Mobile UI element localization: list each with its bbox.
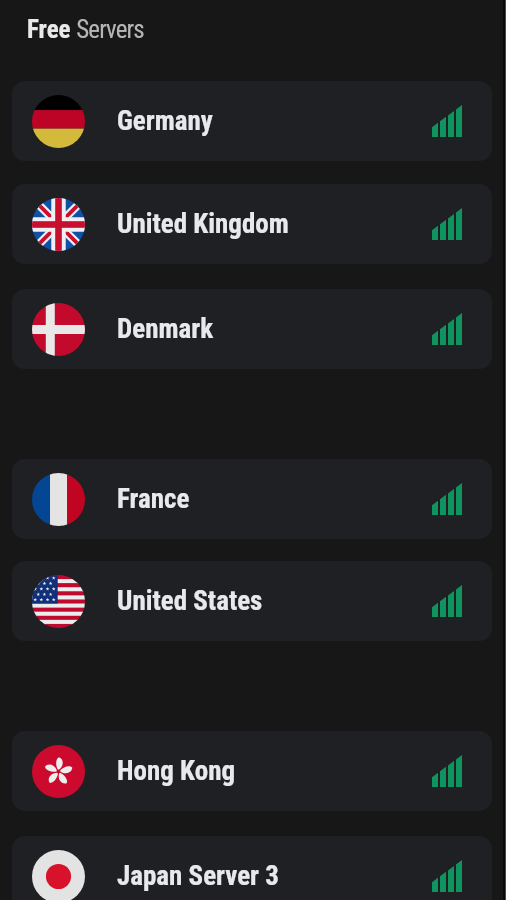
staticText: Free Servers <box>27 15 144 44</box>
staticText: Japan Server 3 <box>117 860 279 892</box>
other: Signal strength <box>432 313 462 345</box>
button[interactable]: Denmark <box>12 289 492 369</box>
staticText: Denmark <box>117 313 214 345</box>
button[interactable]: United Kingdom <box>12 184 492 264</box>
staticText: Germany <box>117 105 213 137</box>
button[interactable]: Hong Kong <box>12 731 492 811</box>
staticText: United Kingdom <box>117 208 289 240</box>
staticText: France <box>117 483 190 515</box>
other: Signal strength <box>432 208 462 240</box>
other: Signal strength <box>432 860 462 892</box>
other: Signal strength <box>432 483 462 515</box>
button[interactable]: Japan Server 3 <box>12 836 492 900</box>
button[interactable]: United States <box>12 561 492 641</box>
staticText: United States <box>117 585 263 617</box>
other: Signal strength <box>432 105 462 137</box>
staticText: Hong Kong <box>117 755 236 787</box>
other: Signal strength <box>432 585 462 617</box>
button[interactable]: Germany <box>12 81 492 161</box>
button[interactable]: France <box>12 459 492 539</box>
other: Signal strength <box>432 755 462 787</box>
